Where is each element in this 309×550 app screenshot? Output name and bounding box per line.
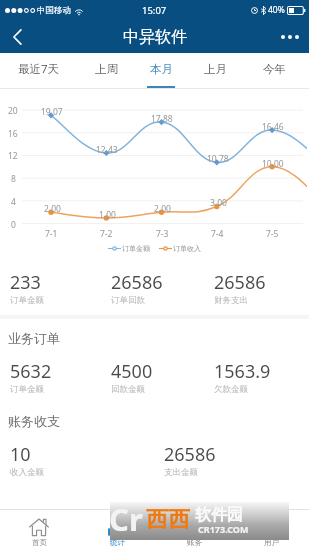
staticText: 欠款金额 xyxy=(214,384,248,395)
staticText: 本月 xyxy=(150,62,173,76)
button[interactable]: 用户 xyxy=(232,509,309,550)
staticText: 财务支出 xyxy=(214,295,248,306)
staticText: 首页 xyxy=(32,538,47,547)
staticText: 12.43 xyxy=(96,144,118,156)
staticText: 26586 xyxy=(164,442,216,467)
staticText: 西西 xyxy=(146,506,190,534)
button[interactable]: More options xyxy=(271,20,309,53)
staticText: 最近7天 xyxy=(18,61,60,77)
staticText: 233 xyxy=(10,270,41,295)
staticText: 20 xyxy=(8,105,18,117)
staticText: 回款金额 xyxy=(111,384,145,395)
staticText: 4 xyxy=(11,196,16,208)
staticText: 今年 xyxy=(263,62,286,76)
staticText: 3.00 xyxy=(210,197,227,209)
button[interactable]: 今年 xyxy=(247,53,301,89)
staticText: 订单金额 xyxy=(10,384,44,395)
staticText: 5632 xyxy=(10,359,52,384)
button[interactable]: 最近7天 xyxy=(5,53,73,89)
staticText: 26586 xyxy=(111,270,163,295)
button[interactable]: 首页 xyxy=(0,509,78,550)
staticText: 2.00 xyxy=(44,203,61,215)
staticText: 16 xyxy=(8,128,18,140)
staticText: 上周 xyxy=(95,62,118,76)
button[interactable]: 统计 xyxy=(78,509,155,550)
staticText: 26586 xyxy=(214,270,266,295)
staticText: 4500 xyxy=(111,359,153,384)
staticText: 16.46 xyxy=(262,121,284,133)
staticText: 40% xyxy=(268,4,285,16)
staticText: 业务订单 xyxy=(8,330,60,346)
staticText: 10 xyxy=(10,442,31,467)
button[interactable]: 上周 xyxy=(79,53,133,89)
staticText: 7-1 xyxy=(45,228,58,240)
button[interactable]: Back xyxy=(0,20,34,53)
staticText: 7-2 xyxy=(100,228,113,240)
staticText: 上月 xyxy=(204,62,227,76)
staticText: 17.88 xyxy=(151,113,173,125)
staticText: 用户 xyxy=(264,538,279,547)
staticText: 10.78 xyxy=(207,153,229,165)
staticText: 7-3 xyxy=(156,228,169,240)
staticText: 10.00 xyxy=(262,158,284,170)
staticText: 账务收支 xyxy=(8,413,60,429)
staticText: 支出金额 xyxy=(164,467,198,478)
staticText: 7-5 xyxy=(266,228,279,240)
staticText: 1.00 xyxy=(99,209,116,221)
staticText: 软件园 xyxy=(195,505,243,525)
staticText: 订单金额 xyxy=(10,295,44,306)
staticText: 1563.9 xyxy=(214,359,271,384)
staticText: 15:07 xyxy=(142,4,167,17)
button[interactable]: 账务 xyxy=(155,509,232,550)
button[interactable]: 上月 xyxy=(188,53,242,89)
staticText: Cr xyxy=(109,498,143,536)
staticText: 收入金额 xyxy=(10,467,44,478)
staticText: 8 xyxy=(11,173,16,185)
button[interactable]: 本月 xyxy=(134,53,188,89)
staticText: 2.00 xyxy=(154,203,171,215)
staticText: 订单金额 xyxy=(122,244,150,253)
staticText: 订单回款 xyxy=(111,295,145,306)
staticText: 订单收入 xyxy=(173,244,201,253)
staticText: 0 xyxy=(11,219,16,231)
staticText: 中异软件 xyxy=(123,27,187,47)
staticText: 7-4 xyxy=(211,228,224,240)
staticText: 12 xyxy=(8,150,18,162)
staticText: CR173.COM xyxy=(198,523,249,535)
staticText: 中国移动 xyxy=(37,5,71,16)
staticText: 账务 xyxy=(187,538,202,547)
staticText: 统计 xyxy=(110,538,125,547)
staticText: 19.07 xyxy=(41,106,63,118)
